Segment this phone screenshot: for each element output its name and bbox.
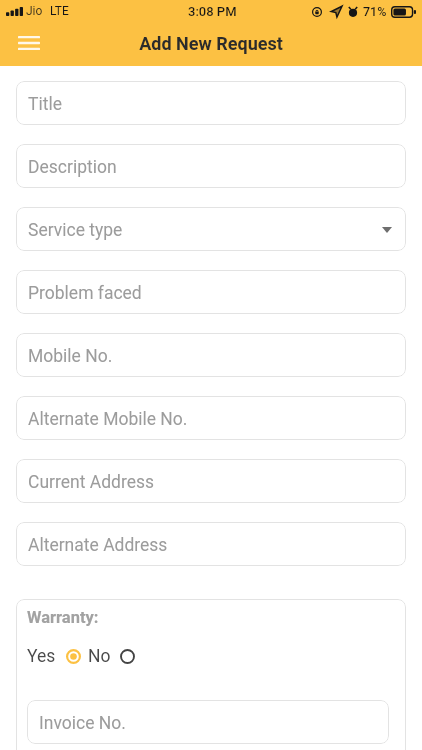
button[interactable]: Alternate Address xyxy=(16,522,406,566)
button[interactable]: Yes xyxy=(27,646,81,667)
button[interactable]: Open navigation menu xyxy=(0,22,58,66)
staticText: Service type xyxy=(28,220,123,241)
button[interactable]: Description xyxy=(16,144,406,188)
staticText: Jio xyxy=(26,4,43,18)
staticText: Mobile No. xyxy=(28,346,113,367)
button[interactable]: Title xyxy=(16,81,406,125)
staticText: 71% xyxy=(363,4,387,19)
button[interactable]: Service type xyxy=(16,207,406,251)
button[interactable]: Invoice No. xyxy=(27,700,389,744)
button[interactable]: Alternate Mobile No. xyxy=(16,396,406,440)
staticText: Warranty: xyxy=(27,608,99,627)
staticText: Current Address xyxy=(28,472,155,493)
button[interactable]: No xyxy=(88,646,135,667)
staticText: Title xyxy=(28,94,62,115)
staticText: LTE xyxy=(50,4,69,18)
button[interactable]: Problem faced xyxy=(16,270,406,314)
staticText: No xyxy=(88,646,111,667)
staticText: 3:08 PM xyxy=(188,4,237,19)
staticText: Problem faced xyxy=(28,283,142,304)
staticText: Description xyxy=(28,157,117,178)
staticText: Yes xyxy=(27,646,56,667)
button[interactable]: Mobile No. xyxy=(16,333,406,377)
staticText: Invoice No. xyxy=(39,713,126,734)
button[interactable]: Current Address xyxy=(16,459,406,503)
staticText: Add New Request xyxy=(139,33,283,54)
staticText: Alternate Mobile No. xyxy=(28,409,188,430)
staticText: Alternate Address xyxy=(28,535,168,556)
